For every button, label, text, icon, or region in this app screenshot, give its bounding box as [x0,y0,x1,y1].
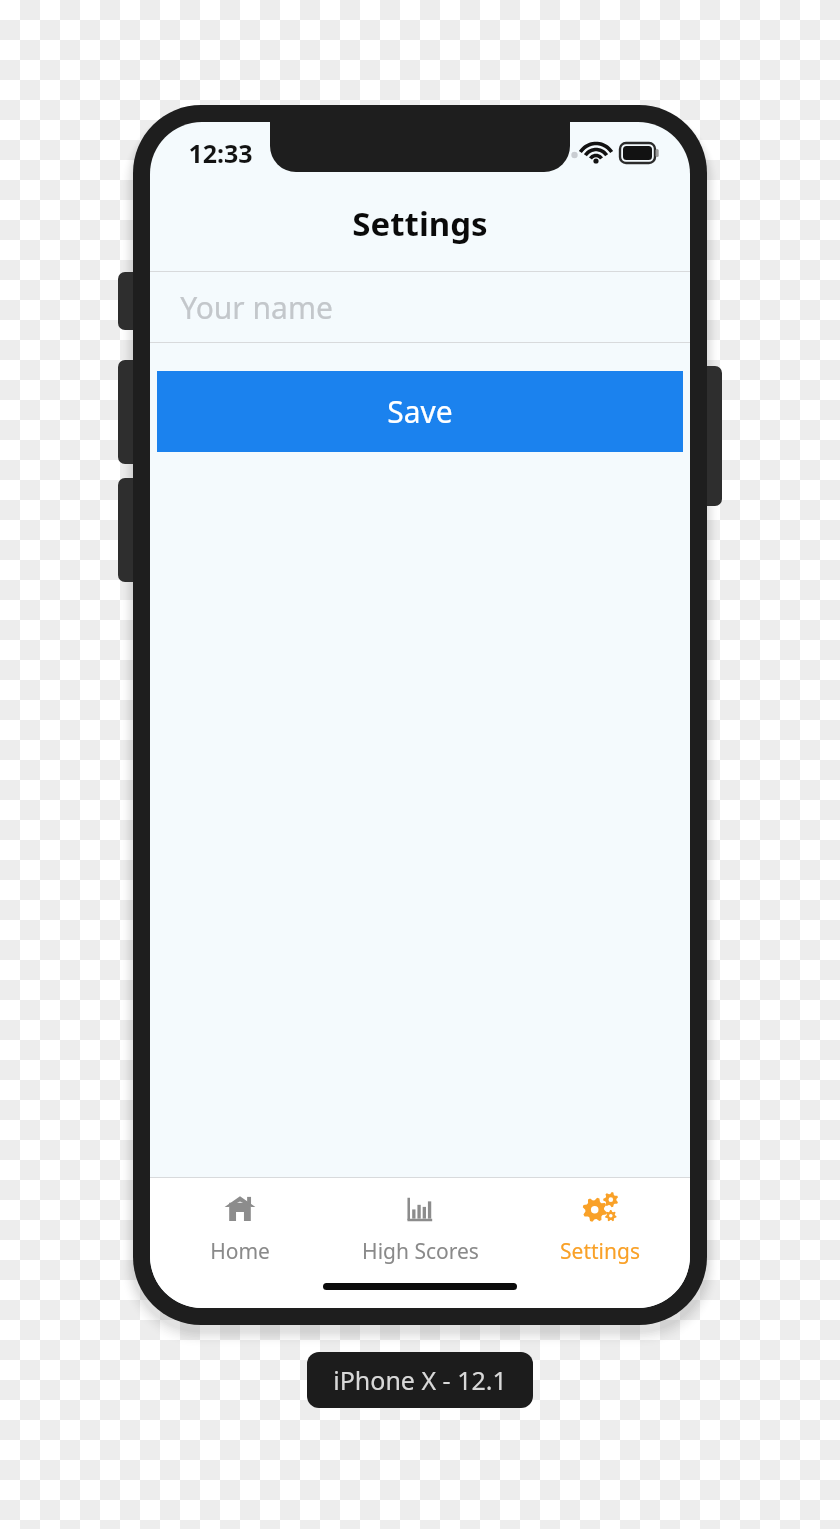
staticText: iPhone X - 12.1 [333,1363,507,1397]
button[interactable]: Settings [510,1178,690,1266]
button[interactable]: High Scores [330,1178,510,1266]
staticText: Home [210,1237,270,1266]
staticText: Settings [560,1237,640,1266]
staticText: Save [387,391,453,432]
staticText: Your name [180,287,333,328]
staticText: High Scores [362,1237,479,1266]
staticText: Settings [352,201,488,246]
button[interactable]: Your name [150,272,690,342]
staticText: 12:33 [188,136,253,170]
button[interactable]: Home [150,1178,330,1266]
button[interactable]: Save [157,371,683,452]
